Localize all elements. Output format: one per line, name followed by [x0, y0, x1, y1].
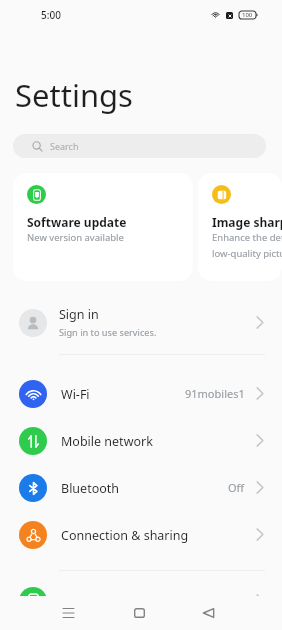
button[interactable]: Search: [13, 134, 266, 158]
staticText: 5:00: [41, 8, 61, 22]
staticText: Mobile network: [61, 433, 256, 450]
staticText: Software update: [27, 214, 127, 230]
staticText: 91mobiles1: [185, 386, 245, 401]
staticText: 100: [242, 11, 253, 19]
staticText: Bluetooth: [61, 480, 228, 497]
button[interactable]: Image sharpener: [198, 173, 282, 281]
button[interactable]: Software update: [13, 173, 193, 281]
button[interactable]: Sign in: [0, 294, 282, 351]
staticText: Connection & sharing: [61, 527, 256, 544]
button[interactable]: Mobile network: [0, 417, 282, 464]
button[interactable]: Connection & sharing: [0, 511, 282, 558]
staticText: New version available: [27, 231, 124, 244]
button[interactable]: Bluetooth: [0, 464, 282, 511]
staticText: Sign in to use services.: [59, 326, 157, 339]
staticText: Display: [61, 593, 256, 610]
staticText: Image sharpener: [212, 214, 282, 230]
staticText: Enhance the details of: [212, 231, 282, 244]
button[interactable]: Home: [123, 597, 155, 629]
button[interactable]: Wi-Fi: [0, 370, 282, 417]
staticText: Sign in: [59, 306, 99, 323]
staticText: Settings: [15, 74, 133, 116]
staticText: Wi-Fi: [61, 386, 185, 403]
staticText: Search: [50, 140, 79, 152]
staticText: Off: [228, 480, 245, 495]
button[interactable]: Recent apps: [52, 597, 84, 629]
button[interactable]: Back: [192, 597, 224, 629]
staticText: low-quality pictures: [212, 247, 282, 260]
button[interactable]: Display: [0, 577, 282, 624]
